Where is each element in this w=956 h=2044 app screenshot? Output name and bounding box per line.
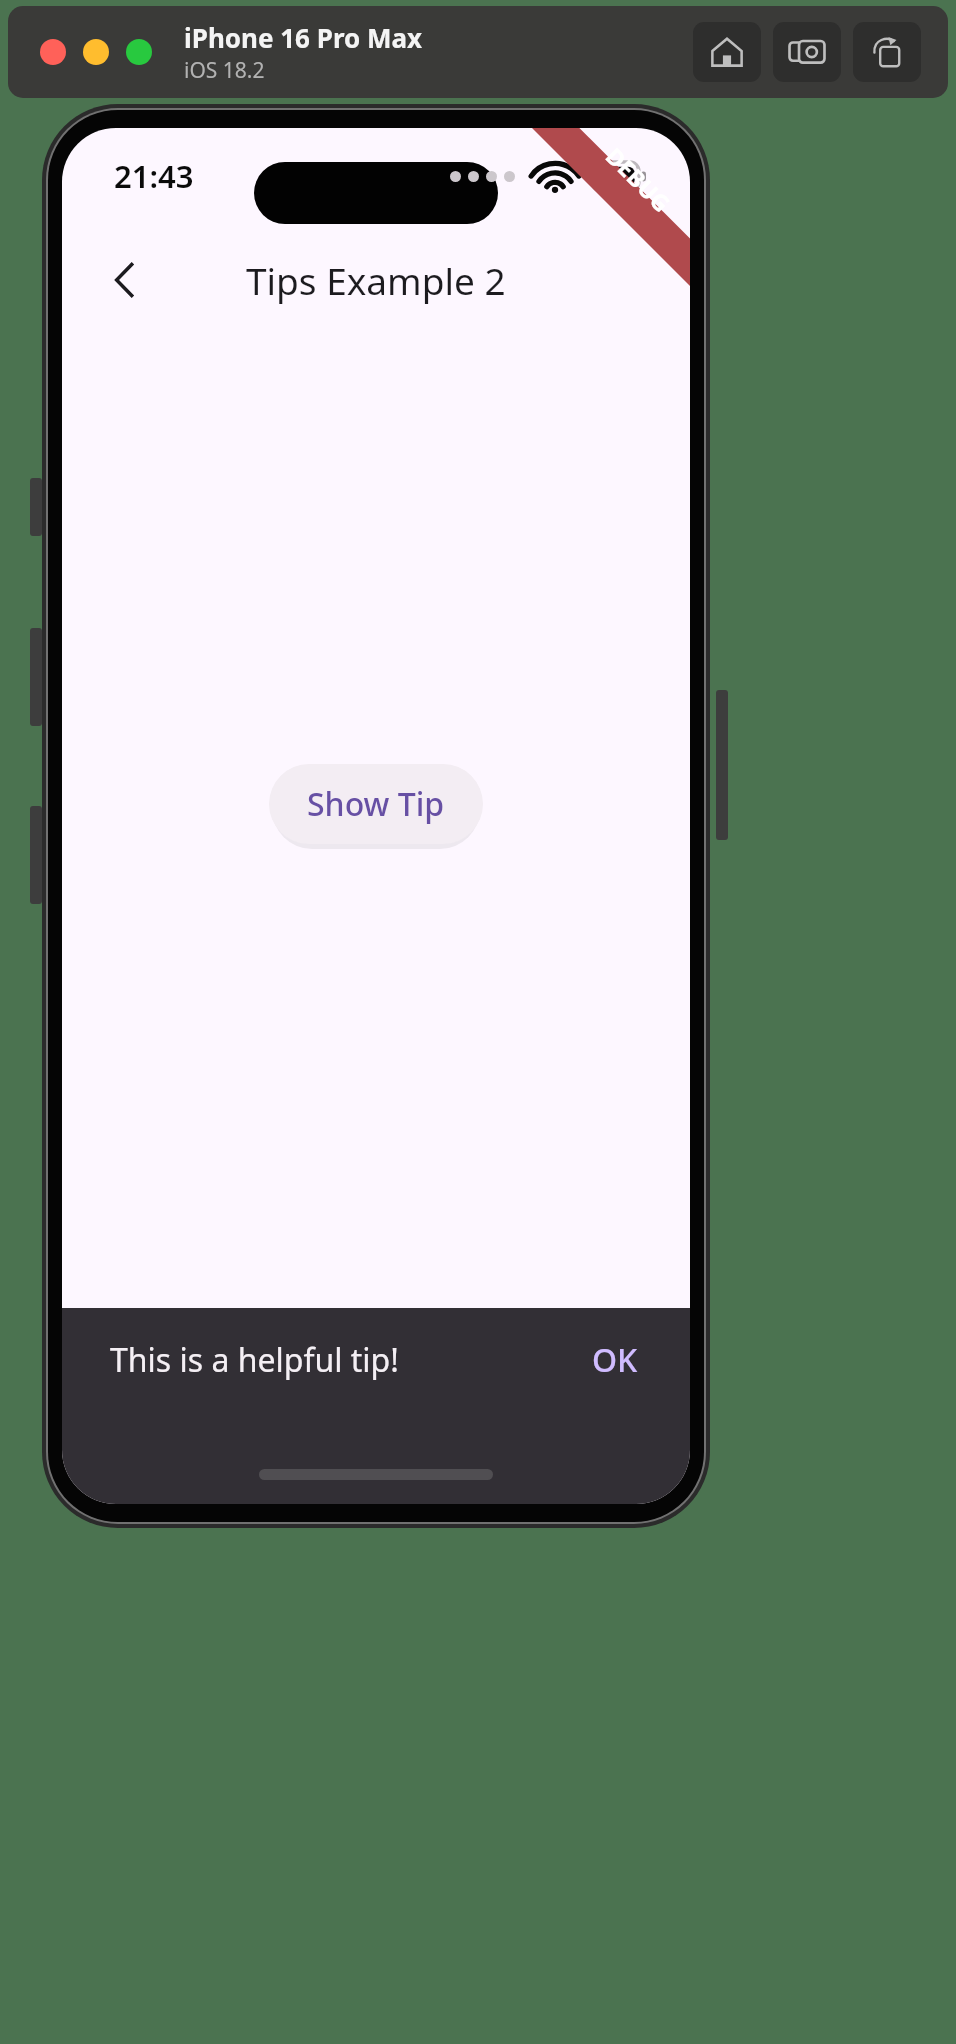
staticText: DEBUG — [600, 140, 678, 219]
staticText: iOS 18.2 — [184, 56, 265, 85]
staticText: iPhone 16 Pro Max — [184, 20, 423, 55]
button[interactable]: Show Tip — [269, 764, 483, 844]
staticText: OK — [592, 1338, 638, 1382]
staticText: Show Tip — [307, 782, 445, 826]
staticText: Tips Example 2 — [246, 255, 506, 305]
button[interactable]: Back — [86, 241, 164, 319]
staticText: This is a helpful tip! — [110, 1338, 399, 1382]
staticText: 21:43 — [114, 155, 194, 197]
button[interactable]: OK — [568, 1320, 662, 1400]
button[interactable]: Rotate — [853, 22, 921, 82]
button[interactable]: Home — [693, 22, 761, 82]
button[interactable]: Screenshot — [773, 22, 841, 82]
